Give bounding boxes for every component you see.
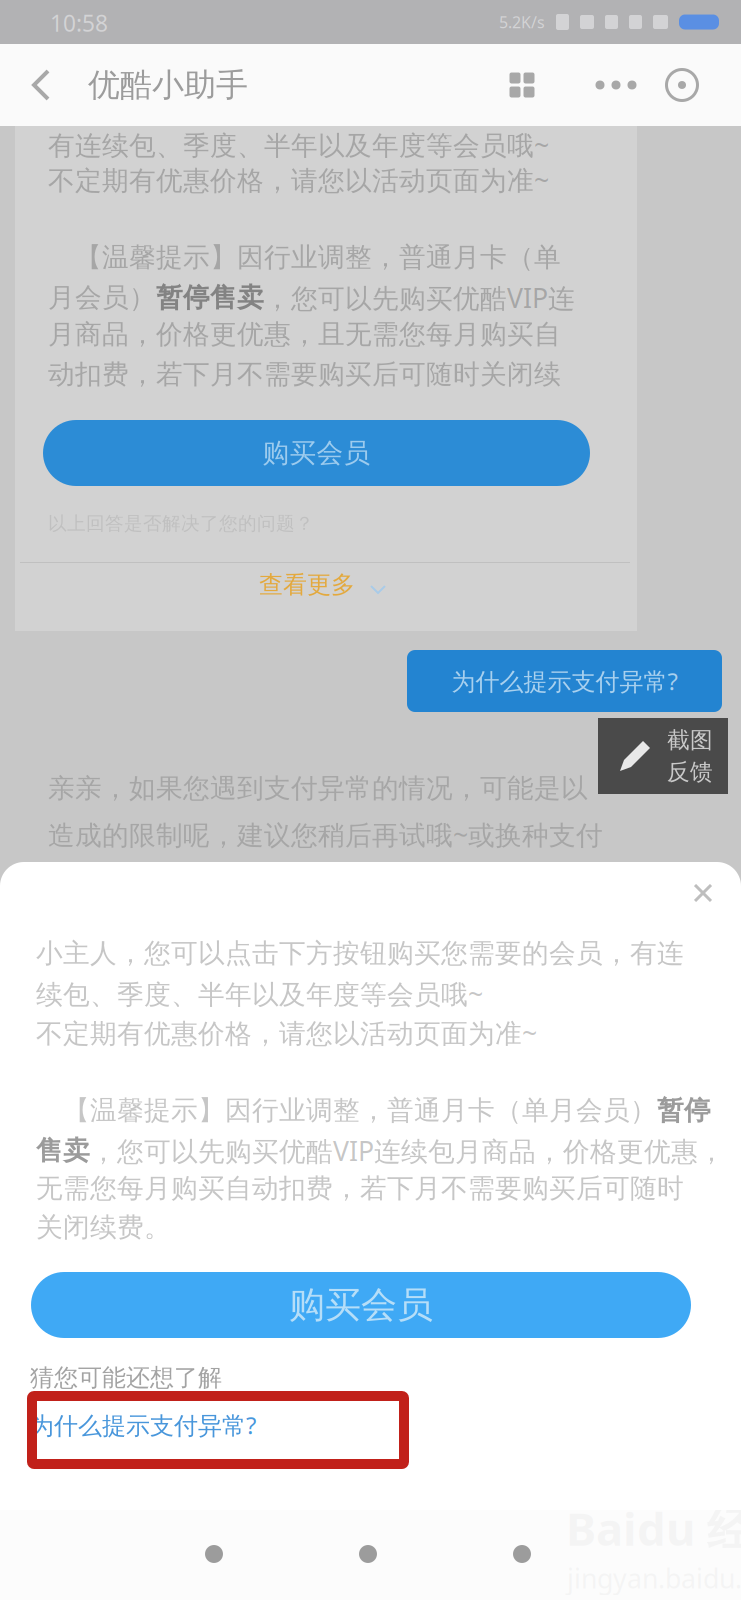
button[interactable]: Screenshot feedback bbox=[598, 718, 728, 794]
staticText: 不定期有优惠价格，请您以活动页面为准~ bbox=[36, 1015, 537, 1050]
staticText: 关闭续费。 bbox=[36, 1211, 171, 1244]
staticText: 月商品，价格更优惠，且无需您每月购买自 bbox=[48, 318, 561, 351]
button[interactable]: Mini program menu bbox=[494, 57, 550, 113]
staticText: 查看更多 bbox=[259, 570, 355, 599]
staticText: 小主人，您可以点击下方按钮购买您需要的会员，有连 bbox=[36, 937, 684, 970]
staticText: 造成的限制呢，建议您稍后再试哦~或换种支付 bbox=[48, 817, 603, 852]
staticText: 动扣费，若下月不需要购买后可随时关闭续 bbox=[48, 358, 561, 391]
staticText: 10:58 bbox=[50, 8, 108, 38]
staticText: 为什么提示支付异常? bbox=[451, 665, 677, 697]
button[interactable]: Home bbox=[333, 1519, 403, 1589]
button[interactable]: Back bbox=[487, 1519, 557, 1589]
staticText: 反馈 bbox=[667, 758, 713, 786]
staticText: 5.2K/s bbox=[499, 11, 545, 33]
button[interactable]: Close mini program bbox=[654, 57, 710, 113]
staticText: 续包、季度、半年以及年度等会员哦~ bbox=[36, 976, 483, 1011]
staticText: 月会员） bbox=[48, 281, 156, 314]
button[interactable]: 购买会员 bbox=[43, 420, 590, 486]
button[interactable]: 为什么提示支付异常? bbox=[0, 1391, 412, 1459]
staticText: 猜您可能还想了解 bbox=[30, 1363, 222, 1392]
button[interactable]: More bbox=[588, 57, 644, 113]
staticText: 购买会员 bbox=[262, 437, 370, 469]
staticText: 购买会员 bbox=[289, 1283, 433, 1327]
staticText: 【温馨提示】因行业调整，普通月卡（单 bbox=[48, 241, 561, 274]
staticText: ，您可以先购买优酷VIP连续包月商品，价格更优惠， bbox=[90, 1133, 725, 1168]
staticText: 为什么提示支付异常? bbox=[30, 1409, 256, 1441]
staticText: 售卖 bbox=[36, 1134, 90, 1167]
staticText: ，您可以先购买优酷VIP连 bbox=[264, 280, 575, 315]
button[interactable]: Close bbox=[680, 870, 726, 916]
staticText: 截图 bbox=[667, 726, 713, 754]
staticText: 【温馨提示】因行业调整，普通月卡（单月会员） bbox=[36, 1094, 657, 1127]
button[interactable]: Recents bbox=[179, 1519, 249, 1589]
staticText: 亲亲，如果您遇到支付异常的情况，可能是以 bbox=[48, 772, 588, 805]
button[interactable]: Back bbox=[18, 53, 68, 117]
staticText: 有连续包、季度、半年以及年度等会员哦~ bbox=[48, 127, 549, 162]
staticText: 暂停售卖 bbox=[156, 281, 264, 314]
staticText: 不定期有优惠价格，请您以活动页面为准~ bbox=[48, 162, 549, 197]
staticText: 暂停 bbox=[657, 1094, 711, 1127]
button[interactable]: 购买会员 bbox=[31, 1272, 691, 1338]
staticText: 以上回答是否解决了您的问题？ bbox=[48, 512, 314, 535]
staticText: Baidu 经验 bbox=[566, 1498, 741, 1558]
staticText: 优酷小助手 bbox=[88, 65, 248, 105]
staticText: 无需您每月购买自动扣费，若下月不需要购买后可随时 bbox=[36, 1172, 684, 1205]
